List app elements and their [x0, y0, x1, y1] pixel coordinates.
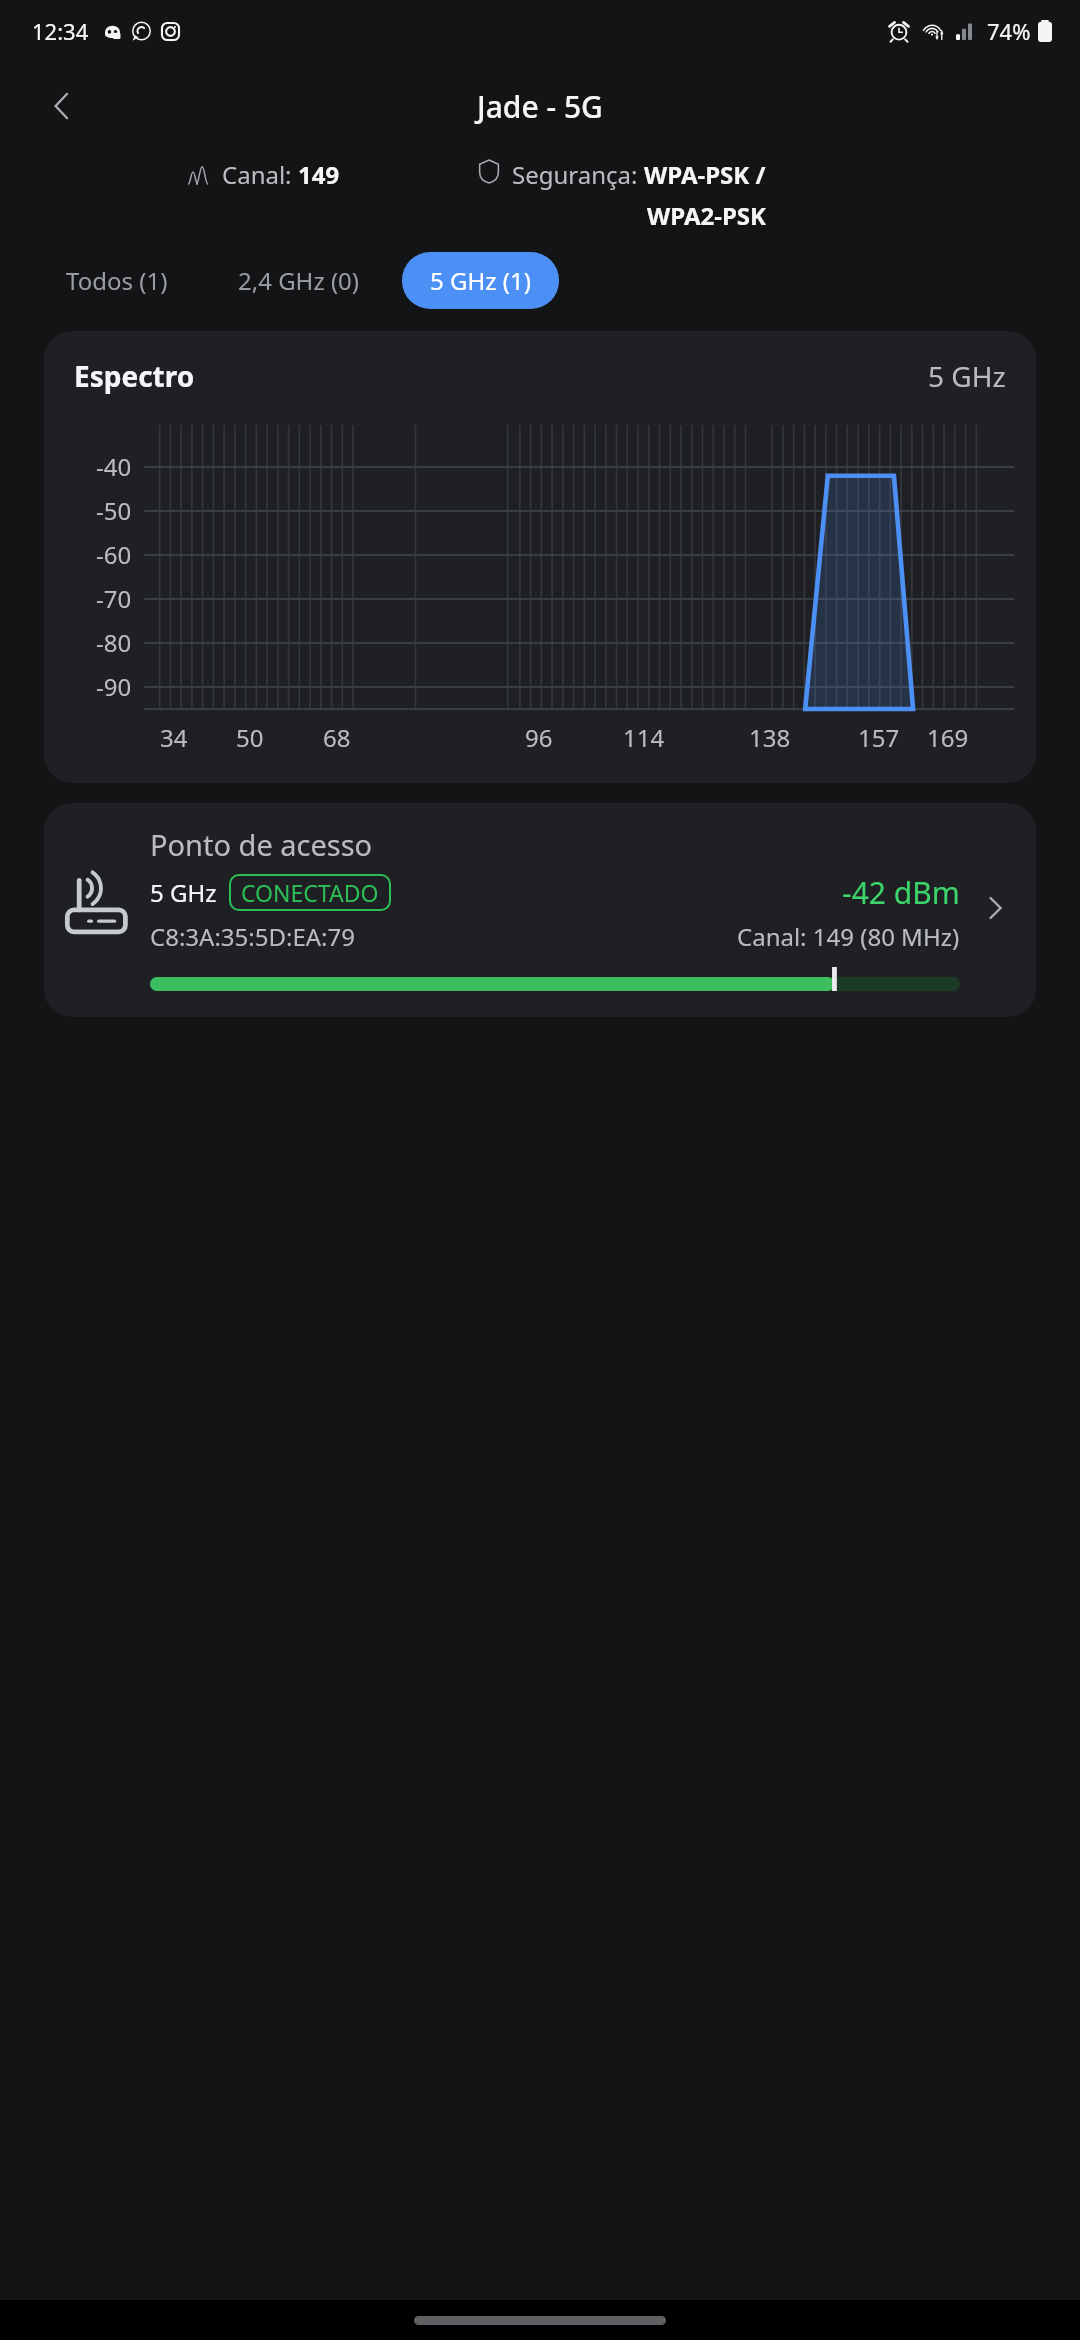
staticText: Canal: 149 (80 MHz)	[737, 920, 960, 953]
staticText: WPA2-PSK	[647, 199, 766, 232]
button[interactable]: Espectro	[44, 331, 1036, 783]
staticText: CONECTADO	[241, 877, 379, 908]
staticText: -90	[96, 670, 132, 703]
button[interactable]: 5 GHz (1)	[402, 252, 559, 309]
button[interactable]: Details	[968, 881, 1022, 935]
staticText: 34	[160, 721, 188, 754]
button[interactable]: Todos (1)	[44, 252, 190, 309]
staticText: -40	[96, 450, 132, 483]
button[interactable]: 2,4 GHz (0)	[216, 252, 382, 309]
staticText: Ponto de acesso	[150, 825, 373, 864]
button[interactable]: Back	[30, 74, 94, 138]
staticText: -80	[96, 626, 132, 659]
staticText: -60	[96, 538, 132, 571]
staticText: 5 GHz	[150, 876, 217, 909]
staticText: C8:3A:35:5D:EA:79	[150, 920, 355, 953]
staticText: 12:34	[32, 16, 89, 46]
staticText: 2,4 GHz (0)	[238, 264, 360, 297]
staticText: Segurança:	[512, 158, 644, 191]
staticText: 169	[927, 721, 969, 754]
staticText: WPA-PSK /	[644, 158, 766, 191]
staticText: Canal:	[222, 158, 298, 191]
staticText: 5 GHz	[928, 357, 1006, 395]
staticText: Jade - 5G	[477, 86, 603, 127]
staticText: -70	[96, 582, 132, 615]
staticText: 5 GHz (1)	[430, 264, 531, 297]
staticText: 96	[525, 721, 553, 754]
staticText: 68	[323, 721, 351, 754]
staticText: Espectro	[74, 357, 195, 395]
staticText: -42 dBm	[842, 872, 960, 913]
staticText: 138	[749, 721, 791, 754]
staticText: 50	[236, 721, 264, 754]
staticText: Todos (1)	[66, 264, 168, 297]
staticText: 157	[858, 721, 900, 754]
staticText: 114	[623, 721, 665, 754]
staticText: 149	[298, 158, 340, 191]
staticText: 74%	[987, 16, 1031, 46]
button[interactable]: Ponto de acesso	[44, 803, 1036, 1017]
staticText: -50	[96, 494, 132, 527]
